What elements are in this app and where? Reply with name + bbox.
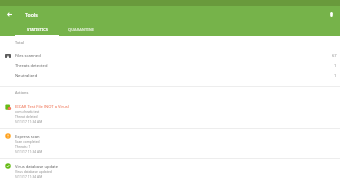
button[interactable]: Threats detected	[0, 61, 340, 71]
staticText: Express scan	[15, 134, 40, 140]
button[interactable]: Back	[0, 6, 18, 22]
staticText: Threats: 1	[15, 144, 31, 148]
staticText: Files scanned	[15, 53, 41, 59]
staticText: EICAR Test File (NOT a Virus)	[15, 104, 69, 110]
button[interactable]: Neutralized	[0, 71, 340, 81]
staticText: 67	[332, 53, 337, 59]
button[interactable]: QUARANTINE	[59, 25, 103, 36]
staticText: Actions	[15, 90, 29, 95]
button[interactable]: More options	[323, 6, 340, 22]
button[interactable]: EICAR Test File (NOT a Virus)	[0, 98, 340, 127]
staticText: Virus database updated	[15, 169, 52, 173]
staticText: 1	[334, 63, 337, 69]
staticText: 5/11/17 11:34 AM	[15, 174, 43, 178]
staticText: Tools	[25, 11, 38, 18]
staticText: QUARANTINE	[68, 27, 94, 32]
button[interactable]: Files scanned	[0, 51, 340, 61]
staticText: STATISTICS	[27, 27, 48, 32]
staticText: 1	[334, 73, 337, 79]
staticText: 5/11/17 11:34 AM	[15, 149, 43, 153]
staticText: com.chewb.test	[15, 109, 40, 113]
staticText: 5/11/17 11:34 AM	[15, 119, 43, 123]
staticText: Neutralized	[15, 73, 38, 79]
staticText: Total	[15, 40, 24, 45]
staticText: Scan completed	[15, 139, 40, 143]
staticText: Threat deleted	[15, 114, 38, 118]
staticText: Virus database update	[15, 164, 59, 170]
button[interactable]: STATISTICS	[15, 25, 59, 36]
staticText: Threats detected	[15, 63, 48, 69]
button[interactable]: Express scan	[0, 128, 340, 157]
button[interactable]: Virus database update	[0, 158, 340, 187]
